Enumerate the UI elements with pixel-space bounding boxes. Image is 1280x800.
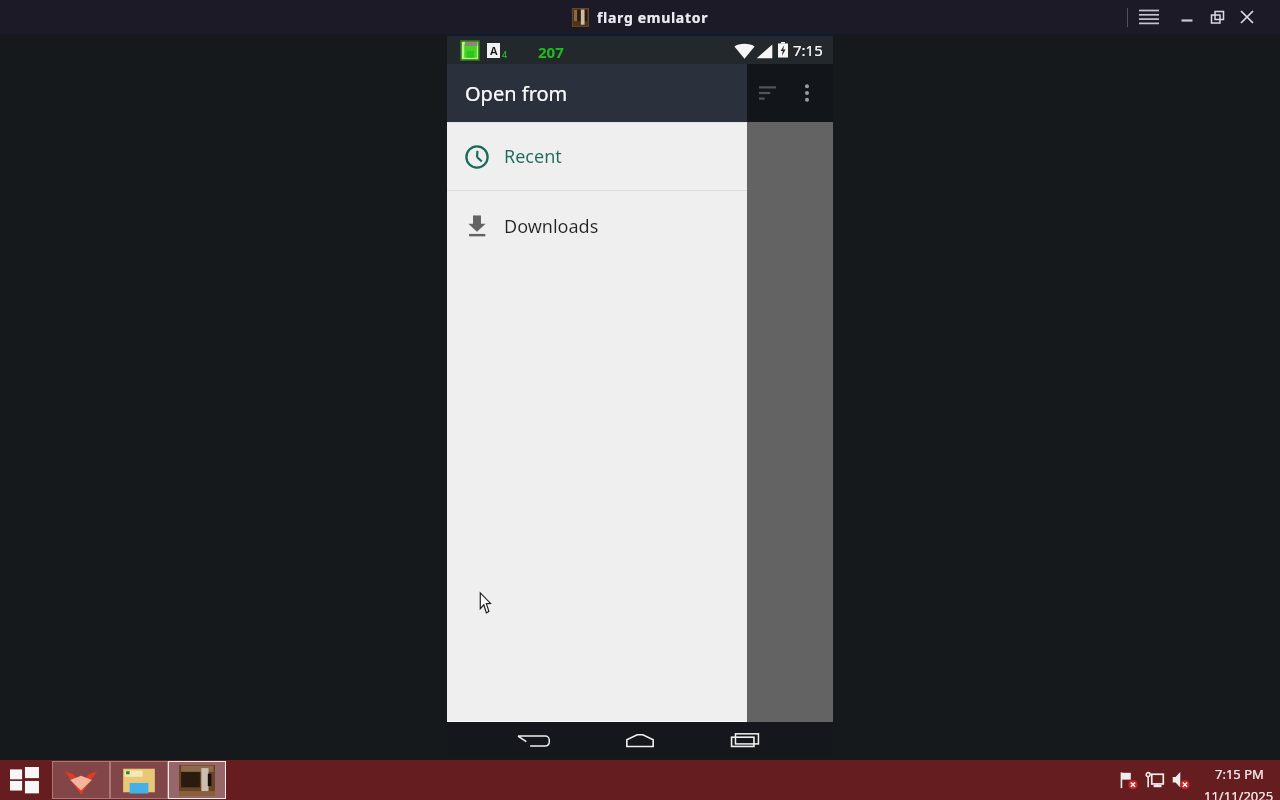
button[interactable]: More options [787,69,826,117]
staticText: Open from [465,80,568,107]
button[interactable]: Network [1116,760,1142,800]
button[interactable]: Firefox [52,761,110,799]
staticText: 11/11/2025 [1204,787,1274,800]
staticText: 4 [502,48,508,60]
button[interactable]: Home [617,722,663,758]
button[interactable]: File Explorer [110,761,168,799]
button[interactable]: Sort [747,69,787,117]
staticText: Recent [504,144,562,169]
button[interactable]: Volume [1168,760,1194,800]
staticText: 207 [538,42,564,62]
staticText: 7:15 PM [1215,765,1264,783]
button[interactable]: Display [1142,760,1168,800]
staticText: A [490,43,498,58]
button[interactable]: Recents [722,722,768,758]
button[interactable]: Back [511,722,557,758]
button[interactable]: Recent [447,123,747,190]
staticText: flarg emulator [597,8,709,27]
button[interactable]: Downloads [447,191,747,261]
button[interactable]: Close [1234,0,1260,34]
button[interactable]: Restore [1204,0,1230,34]
button[interactable]: Menu [1137,0,1161,34]
button[interactable]: Start [0,760,52,800]
button[interactable]: Emulator [168,761,226,799]
staticText: Downloads [504,214,599,239]
staticText: 7:15 [793,40,823,60]
button[interactable]: Minimize [1174,0,1200,34]
